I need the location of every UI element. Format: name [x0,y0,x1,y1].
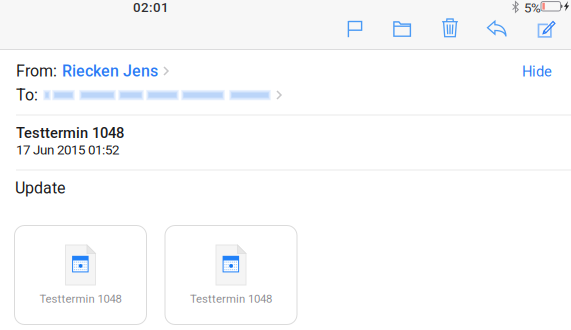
staticText: 5% [524,0,541,16]
button[interactable]: Reply [475,14,519,44]
staticText: Riecken Jens [62,62,158,80]
button[interactable]: Flag [333,14,377,44]
button[interactable]: Hide [512,62,552,80]
staticText: From: [16,62,57,80]
staticText: To: [16,86,38,104]
button[interactable]: Riecken Jens [62,62,169,80]
button[interactable]: Testtermin 1048 [165,225,297,324]
staticText: Update [15,179,65,197]
button[interactable]: Move to folder [380,14,424,44]
staticText: Testtermin 1048 [190,292,272,306]
staticText: Testtermin 1048 [39,292,121,306]
staticText: Testtermin 1048 [16,124,124,142]
button[interactable]: Testtermin 1048 [14,225,146,324]
staticText: Hide [522,63,552,80]
button[interactable]: Compose [525,14,569,44]
staticText: 17 Jun 2015 01:52 [16,142,119,158]
button[interactable] [44,86,282,104]
staticText: 02:01 [133,0,169,15]
button[interactable]: Delete [428,13,472,43]
